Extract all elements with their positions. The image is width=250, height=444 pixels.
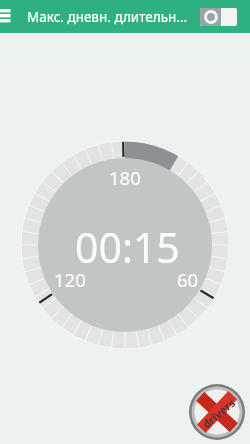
- staticText: Макс. дневн. длительн…: [27, 8, 188, 26]
- staticText: drivers: [199, 395, 238, 431]
- button[interactable]: [200, 8, 237, 26]
- button[interactable]: [21, 141, 229, 349]
- button[interactable]: [0, 0, 18, 33]
- staticText: 180: [109, 165, 141, 190]
- staticText: 120: [54, 267, 86, 292]
- staticText: 00:15: [75, 219, 180, 275]
- staticText: 60: [177, 267, 199, 292]
